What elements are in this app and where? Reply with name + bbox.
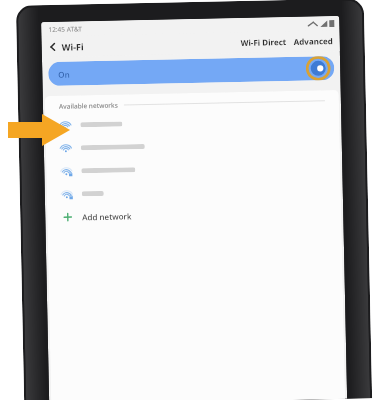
staticText: Add network (82, 210, 132, 222)
other: Wi-Fi toggle on (306, 56, 330, 81)
staticText: Wi-Fi (62, 40, 84, 53)
staticText: On (58, 69, 70, 80)
staticText: Available networks (59, 101, 118, 111)
button[interactable]: On (48, 56, 334, 86)
staticText: 12:45 AT&T (48, 24, 82, 34)
staticText: Wi-Fi Direct (241, 36, 287, 48)
button[interactable]: Wi-Fi network (47, 177, 341, 206)
button[interactable]: Wi-Fi network (46, 154, 340, 183)
button[interactable]: Wi-Fi Direct (237, 34, 290, 50)
button[interactable]: Wi-Fi network (46, 131, 340, 160)
button[interactable]: Wi-Fi network (45, 108, 339, 137)
button[interactable]: Back (46, 40, 60, 54)
button[interactable]: Add network (47, 200, 341, 229)
button[interactable]: Advanced (289, 33, 340, 49)
staticText: Advanced (293, 35, 334, 47)
